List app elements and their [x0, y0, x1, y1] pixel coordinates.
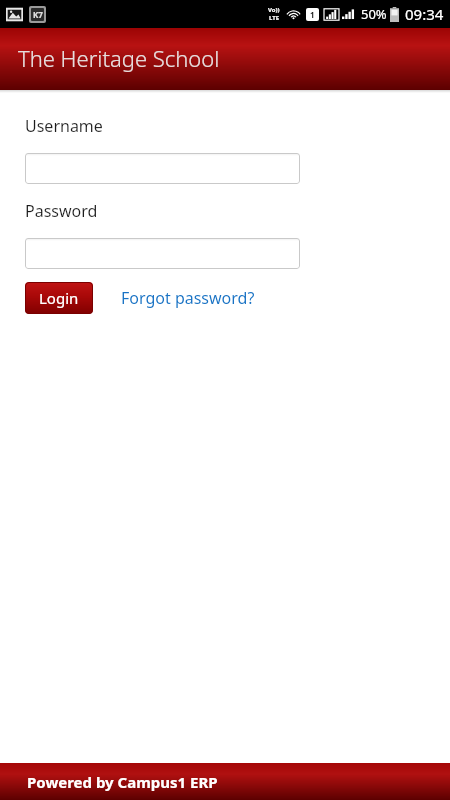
staticText: Login	[39, 288, 79, 308]
button[interactable]	[25, 238, 300, 269]
button[interactable]: Login	[25, 282, 93, 314]
staticText: Vo))	[268, 6, 280, 14]
staticText: K7	[33, 9, 43, 20]
staticText: 50%	[361, 5, 387, 23]
staticText: Password	[25, 200, 98, 222]
button[interactable]	[25, 153, 300, 184]
staticText: Forgot password?	[121, 287, 255, 309]
staticText: Username	[25, 115, 103, 137]
staticText: The Heritage School	[18, 43, 220, 73]
staticText: Powered by Campus1 ERP	[27, 772, 218, 792]
staticText: 1	[310, 9, 315, 20]
button[interactable]: Forgot password?	[121, 287, 255, 309]
staticText: LTE	[269, 14, 280, 22]
staticText: 09:34	[405, 4, 444, 24]
